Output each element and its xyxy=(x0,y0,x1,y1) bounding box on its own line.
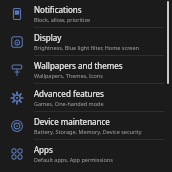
button[interactable]: Apps xyxy=(0,140,172,167)
staticText: Display xyxy=(34,32,62,43)
staticText: Battery, Storage, Memory, Device securit… xyxy=(34,128,142,135)
staticText: Wallpapers and themes xyxy=(34,60,123,71)
staticText: Notifications xyxy=(34,4,82,15)
button[interactable]: Notifications xyxy=(0,0,172,27)
staticText: Games, One-handed mode xyxy=(34,100,104,107)
button[interactable]: Advanced features xyxy=(0,84,172,111)
staticText: Device maintenance xyxy=(34,116,110,127)
staticText: Block, allow, prioritize xyxy=(34,16,91,23)
staticText: Advanced features xyxy=(34,88,104,99)
button[interactable]: Wallpapers and themes xyxy=(0,56,172,83)
staticText: Wallpapers, Themes, Icons xyxy=(34,72,103,79)
staticText: Apps xyxy=(34,144,53,155)
staticText: Brightness, Blue light filter, Home scre… xyxy=(34,44,139,51)
button[interactable]: Device maintenance xyxy=(0,112,172,139)
staticText: Default apps, App permissions xyxy=(34,156,113,163)
button[interactable]: Display xyxy=(0,28,172,55)
